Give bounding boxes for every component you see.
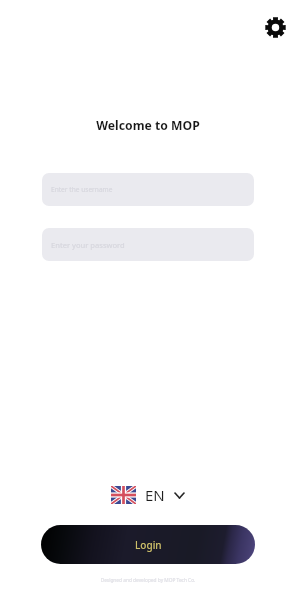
staticText: Enter your password	[51, 240, 125, 250]
button[interactable]: EN	[107, 482, 189, 508]
staticText: Welcome to MOP	[0, 117, 296, 134]
button[interactable]: Settings	[261, 13, 290, 42]
staticText: Login	[135, 538, 162, 552]
staticText: Designed and developed by MOP Tech Co.	[0, 577, 296, 584]
staticText: Enter the username	[51, 185, 113, 194]
button[interactable]: Login	[41, 525, 255, 564]
staticText: EN	[145, 485, 165, 505]
